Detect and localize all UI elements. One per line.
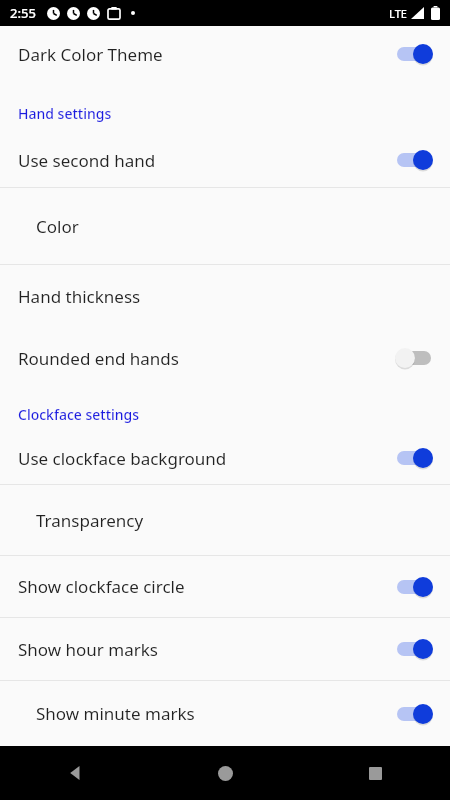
staticText: Use second hand — [18, 149, 156, 172]
staticText: Hand settings — [18, 104, 112, 123]
staticText: Transparency — [36, 509, 144, 532]
button[interactable]: Color — [0, 188, 450, 264]
staticText: 2:55 — [10, 4, 36, 22]
button[interactable]: Use second hand — [0, 133, 450, 187]
staticText: Clockface settings — [18, 405, 140, 424]
staticText: Show clockface circle — [18, 575, 185, 598]
button[interactable]: Hand thickness — [0, 265, 450, 327]
button[interactable]: Home — [150, 746, 300, 800]
button[interactable]: Show hour marks — [0, 618, 450, 680]
staticText: Use clockface background — [18, 447, 227, 470]
staticText: Rounded end hands — [18, 347, 179, 370]
staticText: Dark Color Theme — [18, 43, 163, 66]
staticText: Show minute marks — [36, 702, 195, 725]
staticText: Hand thickness — [18, 285, 141, 308]
staticText: Color — [36, 215, 79, 238]
button[interactable]: Use clockface background — [0, 432, 450, 484]
button[interactable]: Transparency — [0, 485, 450, 555]
staticText: Show hour marks — [18, 638, 158, 661]
button[interactable]: Back — [0, 746, 150, 800]
staticText: LTE — [389, 6, 407, 21]
button[interactable]: Show minute marks — [0, 681, 450, 746]
button[interactable]: Recent apps — [300, 746, 450, 800]
button[interactable]: Dark Color Theme — [0, 26, 450, 82]
button[interactable]: Show clockface circle — [0, 556, 450, 617]
button[interactable]: Rounded end hands — [0, 327, 450, 389]
